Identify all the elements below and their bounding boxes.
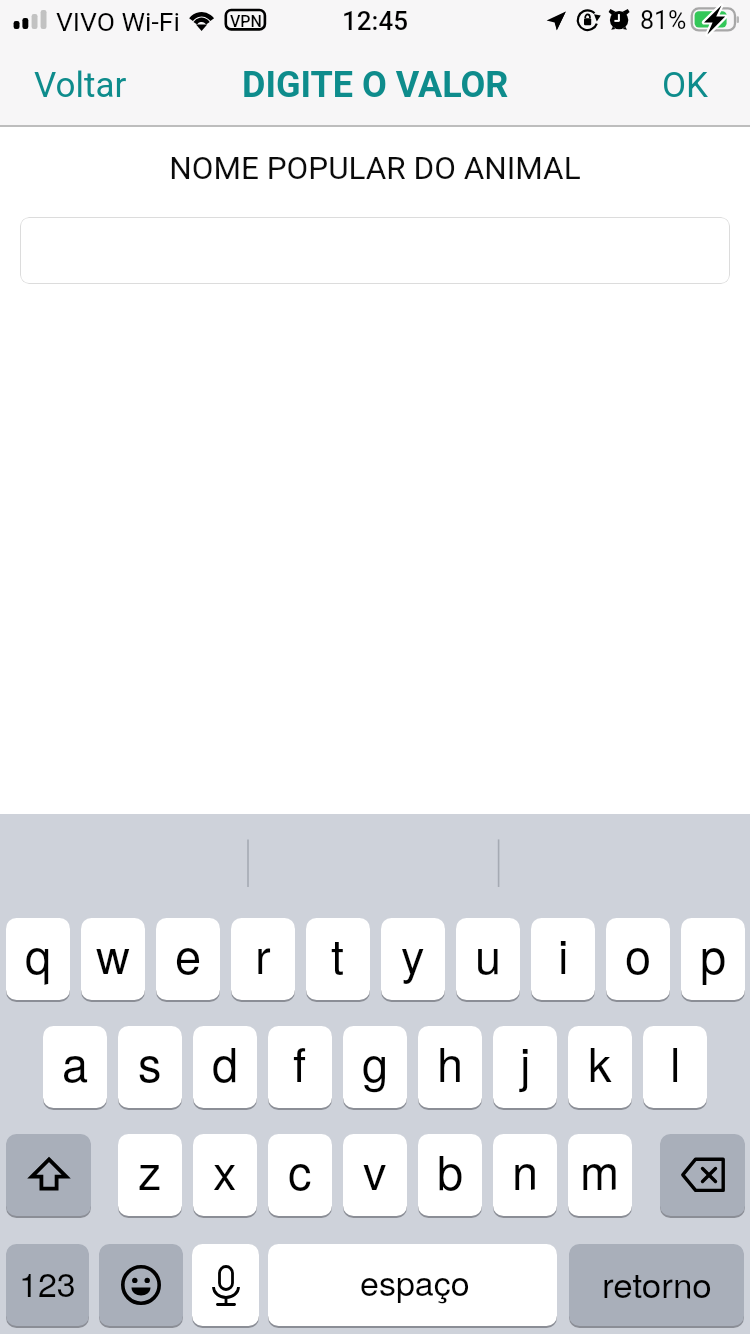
staticText: q xyxy=(25,920,52,987)
staticText: o xyxy=(625,920,652,987)
button[interactable]: m xyxy=(568,1134,632,1216)
button[interactable]: Dictate xyxy=(192,1244,259,1326)
button[interactable]: 123 xyxy=(6,1244,89,1326)
button[interactable]: r xyxy=(231,918,295,1000)
button[interactable]: a xyxy=(43,1026,107,1108)
staticText: e xyxy=(175,920,202,987)
staticText: OK xyxy=(662,65,709,106)
button[interactable]: t xyxy=(306,918,370,1000)
staticText: DIGITE O VALOR xyxy=(242,64,509,106)
staticText: w xyxy=(96,920,130,987)
button[interactable]: c xyxy=(268,1134,332,1216)
button[interactable]: y xyxy=(381,918,445,1000)
button[interactable]: espaço xyxy=(268,1244,557,1326)
staticText: r xyxy=(255,920,271,987)
staticText: l xyxy=(670,1028,681,1095)
staticText: p xyxy=(700,920,727,987)
button[interactable]: g xyxy=(343,1026,407,1108)
staticText: z xyxy=(138,1136,162,1203)
staticText: i xyxy=(558,920,569,987)
button[interactable]: Shift xyxy=(6,1134,91,1216)
button[interactable]: w xyxy=(81,918,145,1000)
button[interactable]: b xyxy=(418,1134,482,1216)
staticText: m xyxy=(580,1136,620,1203)
button[interactable]: Emoji xyxy=(99,1244,183,1326)
staticText: 81% xyxy=(640,6,687,35)
staticText: 12:45 xyxy=(0,6,750,36)
staticText: b xyxy=(437,1136,464,1203)
staticText: VIVO Wi-Fi xyxy=(56,6,180,37)
staticText: n xyxy=(512,1136,539,1203)
button[interactable]: f xyxy=(268,1026,332,1108)
button[interactable]: d xyxy=(193,1026,257,1108)
button[interactable]: e xyxy=(156,918,220,1000)
staticText: 123 xyxy=(19,1258,76,1307)
staticText: g xyxy=(362,1028,389,1095)
button[interactable]: Voltar xyxy=(34,65,127,106)
staticText: c xyxy=(288,1136,312,1203)
staticText: a xyxy=(62,1028,89,1095)
button[interactable]: n xyxy=(493,1134,557,1216)
staticText: v xyxy=(363,1136,387,1203)
button[interactable]: l xyxy=(643,1026,707,1108)
button[interactable]: v xyxy=(343,1134,407,1216)
button[interactable]: j xyxy=(493,1026,557,1108)
staticText: Voltar xyxy=(34,65,127,106)
staticText: espaço xyxy=(360,1257,470,1306)
button[interactable]: s xyxy=(118,1026,182,1108)
button[interactable]: retorno xyxy=(569,1244,744,1326)
staticText: d xyxy=(212,1028,239,1095)
button[interactable]: x xyxy=(193,1134,257,1216)
button[interactable]: p xyxy=(681,918,745,1000)
staticText: y xyxy=(401,920,425,987)
button[interactable]: q xyxy=(6,918,70,1000)
staticText: VPN xyxy=(230,12,262,31)
staticText: s xyxy=(138,1028,162,1095)
button[interactable]: Backspace xyxy=(660,1134,745,1216)
button[interactable]: z xyxy=(118,1134,182,1216)
staticText: NOME POPULAR DO ANIMAL xyxy=(0,150,750,187)
button[interactable]: u xyxy=(456,918,520,1000)
button[interactable]: i xyxy=(531,918,595,1000)
button[interactable]: k xyxy=(568,1026,632,1108)
staticText: t xyxy=(331,920,345,987)
staticText: x xyxy=(213,1136,237,1203)
button[interactable]: h xyxy=(418,1026,482,1108)
button[interactable]: OK xyxy=(662,65,709,106)
button[interactable]: o xyxy=(606,918,670,1000)
staticText: retorno xyxy=(602,1258,712,1308)
staticText: j xyxy=(520,1028,531,1095)
staticText: f xyxy=(293,1028,307,1095)
staticText: k xyxy=(588,1028,612,1095)
staticText: h xyxy=(437,1028,464,1095)
button[interactable]: Nome popular do animal xyxy=(20,217,730,284)
staticText: u xyxy=(475,920,502,987)
